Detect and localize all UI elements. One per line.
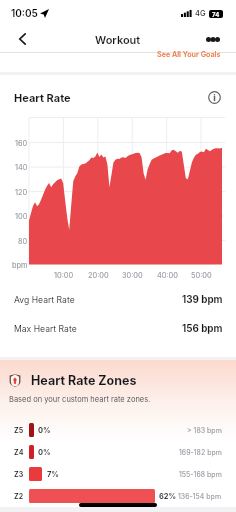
staticText: 0% bbox=[38, 426, 51, 435]
staticText: 160 bbox=[15, 139, 28, 148]
staticText: > 183 bpm bbox=[187, 426, 222, 434]
staticText: Z5 bbox=[14, 426, 24, 434]
staticText: 80 bbox=[18, 237, 28, 246]
staticText: 10:00 bbox=[54, 271, 74, 280]
staticText: Max Heart Rate bbox=[14, 324, 77, 334]
staticText: 4G bbox=[195, 9, 206, 18]
button[interactable]: See All Your Goals bbox=[157, 50, 221, 59]
staticText: 100 bbox=[15, 212, 28, 221]
staticText: bpm bbox=[12, 261, 28, 270]
staticText: 140 bbox=[15, 163, 28, 172]
staticText: 139 bpm bbox=[182, 294, 223, 306]
staticText: 0% bbox=[38, 448, 51, 457]
button[interactable]: More options bbox=[204, 26, 222, 52]
staticText: 30:00 bbox=[122, 271, 143, 280]
staticText: Heart Rate bbox=[14, 91, 71, 104]
staticText: 50:00 bbox=[191, 271, 212, 280]
staticText: 74 bbox=[212, 11, 220, 18]
button[interactable]: Info bbox=[206, 89, 222, 105]
staticText: Z2 bbox=[14, 492, 24, 500]
button[interactable]: Back bbox=[10, 26, 34, 52]
staticText: 62% bbox=[159, 492, 177, 501]
staticText: 136-154 bpm bbox=[178, 492, 222, 500]
staticText: Avg Heart Rate bbox=[14, 295, 75, 305]
staticText: 156 bpm bbox=[182, 323, 223, 335]
staticText: Z4 bbox=[14, 448, 24, 456]
staticText: Based on your custom heart rate zones. bbox=[9, 395, 151, 404]
staticText: Workout bbox=[95, 33, 141, 46]
staticText: 155-168 bpm bbox=[179, 470, 222, 478]
staticText: 169-182 bpm bbox=[179, 448, 222, 456]
staticText: Heart Rate Zones bbox=[31, 373, 137, 388]
staticText: Z3 bbox=[14, 470, 24, 478]
staticText: 10:05 bbox=[11, 7, 38, 19]
staticText: 7% bbox=[47, 470, 59, 479]
staticText: 20:00 bbox=[88, 271, 109, 280]
staticText: 120 bbox=[15, 188, 28, 197]
staticText: 40:00 bbox=[157, 271, 178, 280]
